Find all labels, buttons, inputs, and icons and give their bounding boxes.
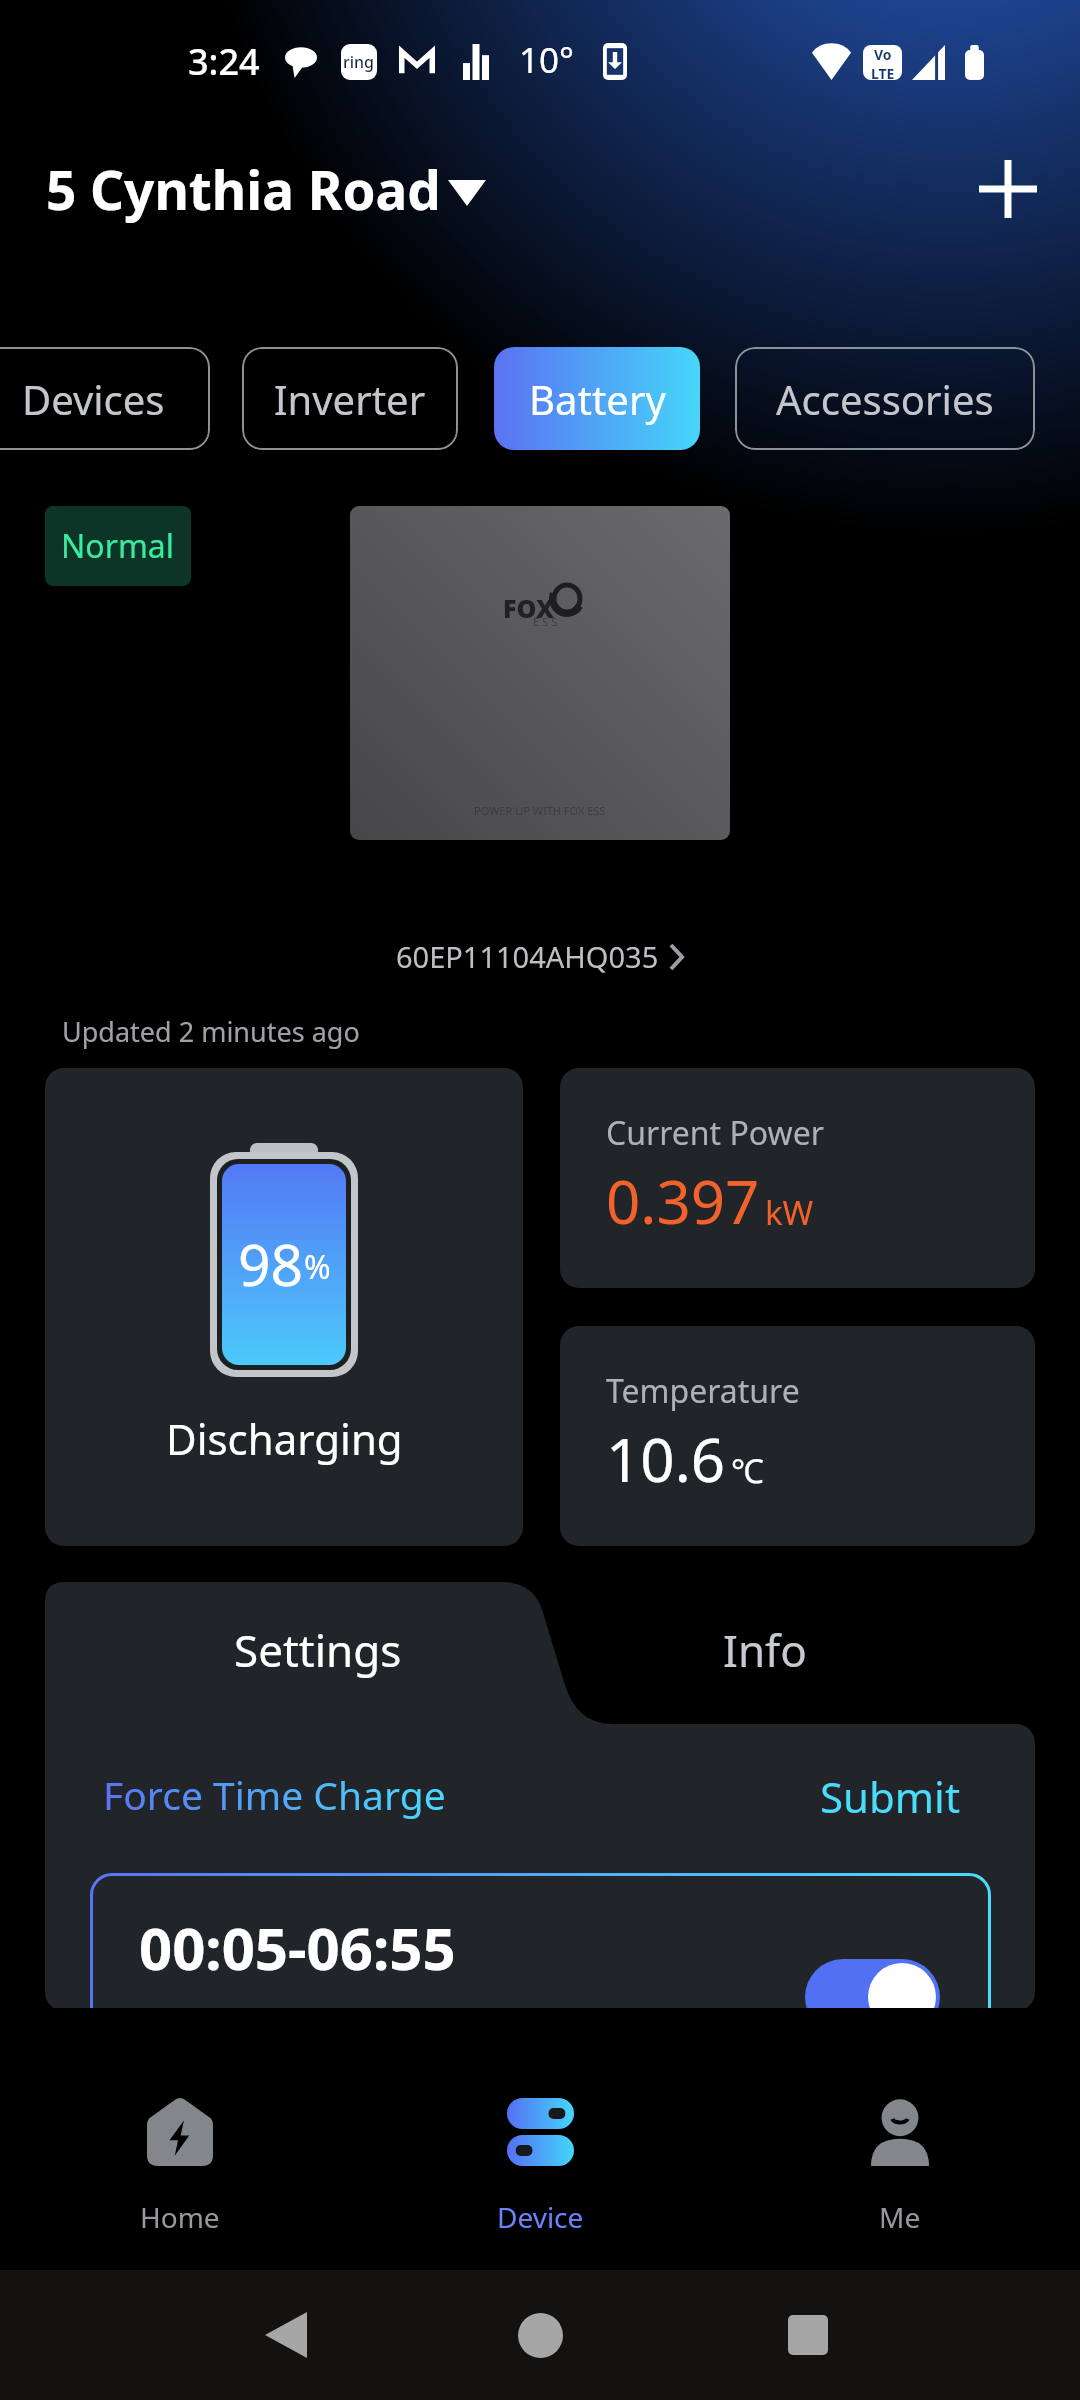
button[interactable]: Device bbox=[360, 2040, 720, 2270]
button[interactable]: Home bbox=[0, 2040, 360, 2270]
staticText: kW bbox=[765, 1190, 814, 1235]
button[interactable]: Inverter bbox=[242, 347, 458, 450]
button[interactable]: 5 Cynthia Road bbox=[46, 153, 486, 225]
staticText: Settings bbox=[234, 1620, 402, 1680]
staticText: Discharging bbox=[166, 1410, 403, 1467]
staticText: Device bbox=[497, 2198, 584, 2236]
button[interactable]: Battery bbox=[494, 347, 700, 450]
button[interactable]: Normal bbox=[45, 506, 191, 586]
button[interactable]: Home bbox=[494, 2289, 586, 2381]
staticText: LTE bbox=[871, 64, 895, 80]
button[interactable]: Accessories bbox=[735, 347, 1035, 450]
staticText: 5 Cynthia Road bbox=[46, 153, 441, 225]
staticText: 0.397 bbox=[606, 1160, 760, 1242]
button[interactable]: Toggle force charge schedule bbox=[805, 1959, 940, 2011]
staticText: Me bbox=[879, 2198, 921, 2236]
staticText: 98 bbox=[238, 1225, 304, 1303]
staticText: 3:24 bbox=[188, 37, 260, 86]
button[interactable]: Settings bbox=[45, 1582, 590, 1724]
button[interactable]: Current Power bbox=[560, 1068, 1035, 1288]
staticText: Battery bbox=[529, 372, 666, 426]
staticText: Force Time Charge bbox=[103, 1768, 446, 1821]
staticText: Temperature bbox=[606, 1369, 800, 1413]
button[interactable]: 60EP11104AHQ035 bbox=[396, 937, 684, 976]
staticText: FOX bbox=[503, 591, 554, 625]
staticText: % bbox=[304, 1245, 331, 1289]
staticText: Info bbox=[723, 1620, 807, 1680]
staticText: Devices bbox=[22, 372, 165, 426]
button[interactable]: Temperature bbox=[560, 1326, 1035, 1546]
button[interactable]: Recents bbox=[762, 2289, 854, 2381]
button[interactable]: Force Time Charge bbox=[103, 1768, 446, 1821]
staticText: Submit bbox=[820, 1768, 961, 1825]
button[interactable]: Submit bbox=[820, 1768, 961, 1825]
staticText: 60EP11104AHQ035 bbox=[396, 937, 659, 976]
staticText: 10.6 bbox=[606, 1418, 726, 1500]
staticText: Vo bbox=[874, 45, 892, 64]
button[interactable]: Back bbox=[240, 2289, 332, 2381]
staticText: Updated 2 minutes ago bbox=[62, 1013, 360, 1050]
staticText: 00:05-06:55 bbox=[139, 1908, 456, 1987]
staticText: Home bbox=[140, 2198, 220, 2236]
staticText: 10° bbox=[519, 36, 575, 84]
staticText: Inverter bbox=[274, 372, 426, 426]
button[interactable]: Info bbox=[590, 1582, 940, 1724]
staticText: Current Power bbox=[606, 1111, 824, 1155]
staticText: ring bbox=[343, 51, 375, 73]
staticText: Accessories bbox=[776, 372, 994, 426]
staticText: ℃ bbox=[731, 1448, 764, 1493]
staticText: Normal bbox=[61, 524, 175, 568]
staticText: ESS bbox=[533, 614, 561, 629]
staticText: POWER UP WITH FOX ESS bbox=[474, 803, 606, 818]
button[interactable]: 98 bbox=[45, 1068, 523, 1546]
button[interactable]: Devices bbox=[0, 347, 210, 450]
button[interactable]: Add device bbox=[960, 141, 1056, 237]
button[interactable]: Me bbox=[720, 2040, 1080, 2270]
